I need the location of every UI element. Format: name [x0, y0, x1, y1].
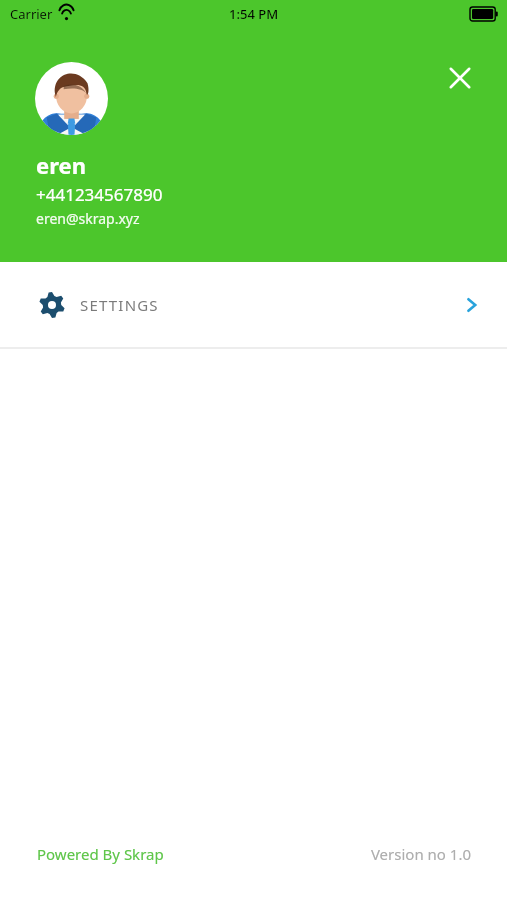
staticText: SETTINGS: [80, 295, 159, 315]
button[interactable]: Close: [437, 55, 483, 101]
staticText: eren: [36, 150, 86, 180]
button[interactable]: SETTINGS: [0, 262, 507, 347]
staticText: +441234567890: [36, 183, 163, 206]
staticText: 1:54 PM: [229, 5, 279, 23]
staticText: eren@skrap.xyz: [36, 209, 140, 228]
button[interactable]: Powered By Skrap: [37, 844, 164, 864]
staticText: Carrier: [10, 5, 53, 23]
staticText: Version no 1.0: [370, 844, 471, 864]
